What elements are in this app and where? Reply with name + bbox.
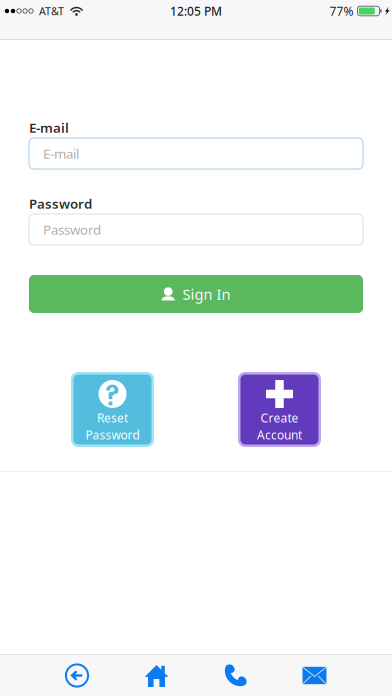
staticText: Create [260, 410, 298, 426]
staticText: Reset [97, 410, 128, 426]
button[interactable]: Back [65, 655, 89, 696]
staticText: Account [257, 427, 302, 443]
staticText: Sign In [182, 284, 230, 304]
staticText: Password [29, 195, 92, 212]
button[interactable]: Home [144, 655, 169, 696]
staticText: Password [43, 221, 101, 238]
button[interactable]: Sign In [29, 275, 363, 313]
button[interactable]: Reset [71, 372, 154, 447]
staticText: E-mail [43, 145, 79, 162]
staticText: Password [85, 427, 139, 443]
button[interactable]: Mail [302, 655, 327, 696]
staticText: AT&T [39, 4, 64, 18]
staticText: E-mail [29, 119, 69, 136]
button[interactable]: Create [238, 372, 321, 447]
staticText: 77% [330, 3, 354, 19]
staticText: 12:05 PM [170, 3, 222, 19]
button[interactable]: Call [224, 655, 247, 696]
